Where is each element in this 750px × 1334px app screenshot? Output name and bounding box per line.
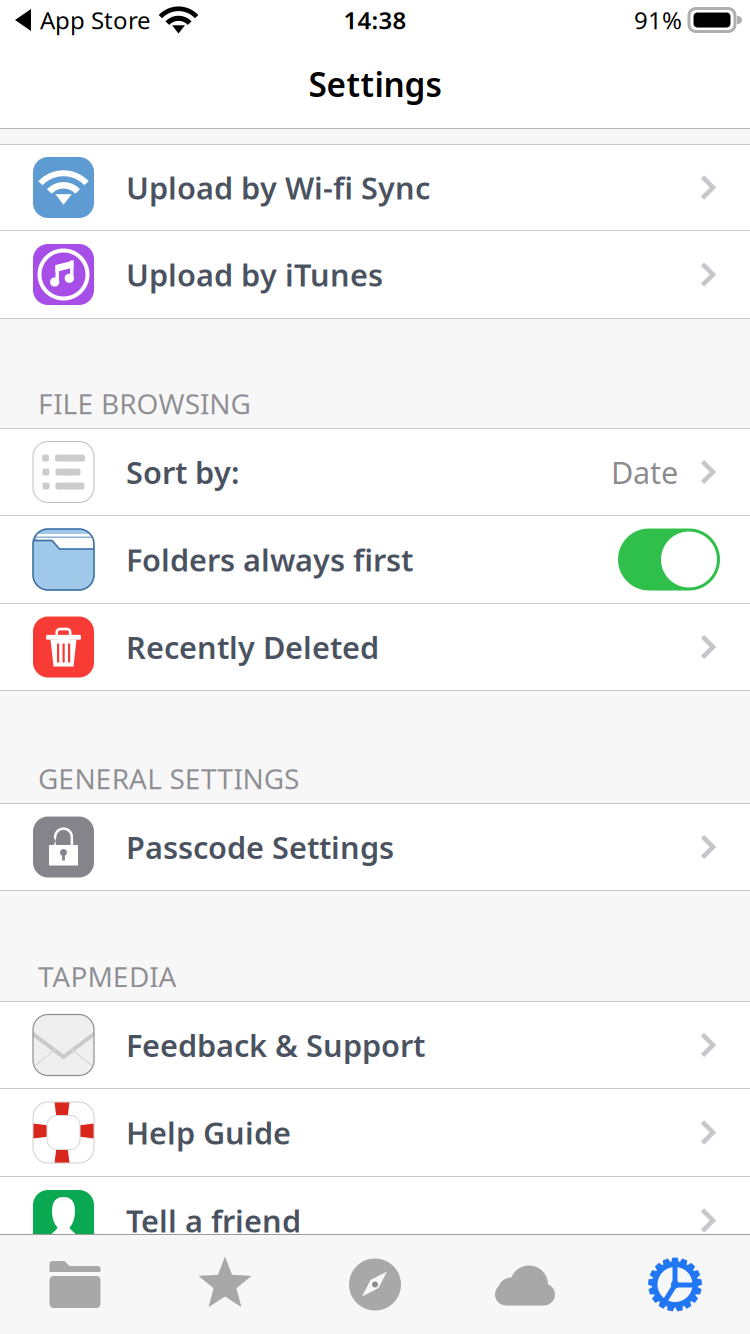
staticText: Sort by: (126, 452, 239, 492)
staticText: Tell a friend (126, 1200, 301, 1241)
staticText: TAPMEDIA (38, 958, 176, 995)
staticText: Folders always first (126, 539, 413, 580)
staticText: Upload by iTunes (126, 254, 383, 295)
button[interactable]: Tell a friend (0, 1177, 750, 1265)
staticText: Date (611, 452, 678, 492)
staticText: Recently Deleted (126, 627, 379, 667)
button[interactable]: Feedback & Support (0, 1002, 750, 1089)
button[interactable]: Files (0, 1235, 150, 1334)
button[interactable]: Settings (600, 1235, 750, 1334)
staticText: Passcode Settings (126, 827, 394, 867)
staticText: FILE BROWSING (38, 385, 250, 422)
button[interactable]: Favourites (150, 1235, 300, 1334)
staticText: Upload by Wi-fi Sync (126, 167, 430, 208)
staticText: GENERAL SETTINGS (38, 760, 299, 797)
button[interactable]: Upload by Wi-fi Sync (0, 145, 750, 231)
staticText: App Store (40, 4, 151, 36)
staticText: Feedback & Support (126, 1025, 425, 1065)
button[interactable]: Cloud (450, 1235, 600, 1334)
button[interactable]: Passcode Settings (0, 804, 750, 891)
button[interactable]: Sort by: (0, 429, 750, 516)
button[interactable]: Help Guide (0, 1089, 750, 1177)
button[interactable]: Upload by iTunes (0, 231, 750, 319)
button[interactable]: Folders always first (0, 516, 750, 604)
button[interactable]: Browser (300, 1235, 450, 1334)
staticText: 14:38 (343, 4, 406, 36)
staticText: 91% (634, 4, 682, 36)
staticText: Help Guide (126, 1112, 291, 1153)
button[interactable]: Recently Deleted (0, 604, 750, 691)
staticText: Settings (308, 62, 441, 106)
